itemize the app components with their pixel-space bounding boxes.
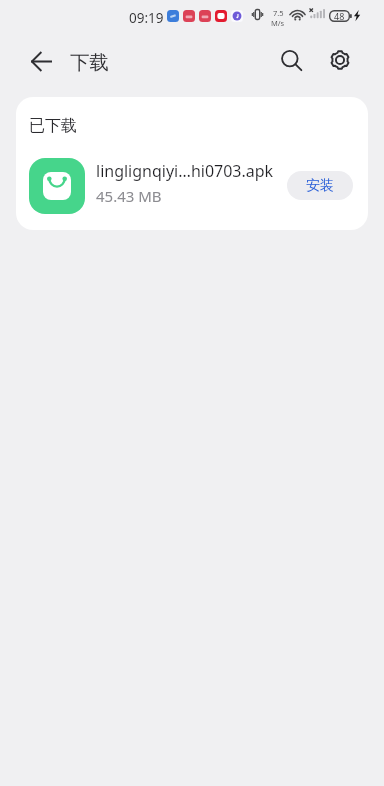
staticText: 下载 — [70, 50, 109, 75]
staticText: 45.43 MB — [96, 186, 162, 206]
button[interactable]: Back — [17, 37, 65, 85]
staticText: 7.5 — [273, 8, 284, 18]
staticText: 48 — [334, 10, 345, 22]
staticText: 安装 — [306, 177, 334, 195]
staticText: 09:19 — [129, 9, 164, 27]
button[interactable]: Settings — [316, 36, 364, 84]
staticText: linglignqiyi…hi0703.apk — [96, 160, 274, 182]
button[interactable]: 安装 — [287, 171, 353, 200]
staticText: M/s — [271, 18, 285, 28]
button[interactable]: linglignqiyi…hi0703.apk — [16, 142, 368, 230]
button[interactable]: Search — [267, 36, 315, 84]
staticText: 已下载 — [29, 116, 77, 136]
